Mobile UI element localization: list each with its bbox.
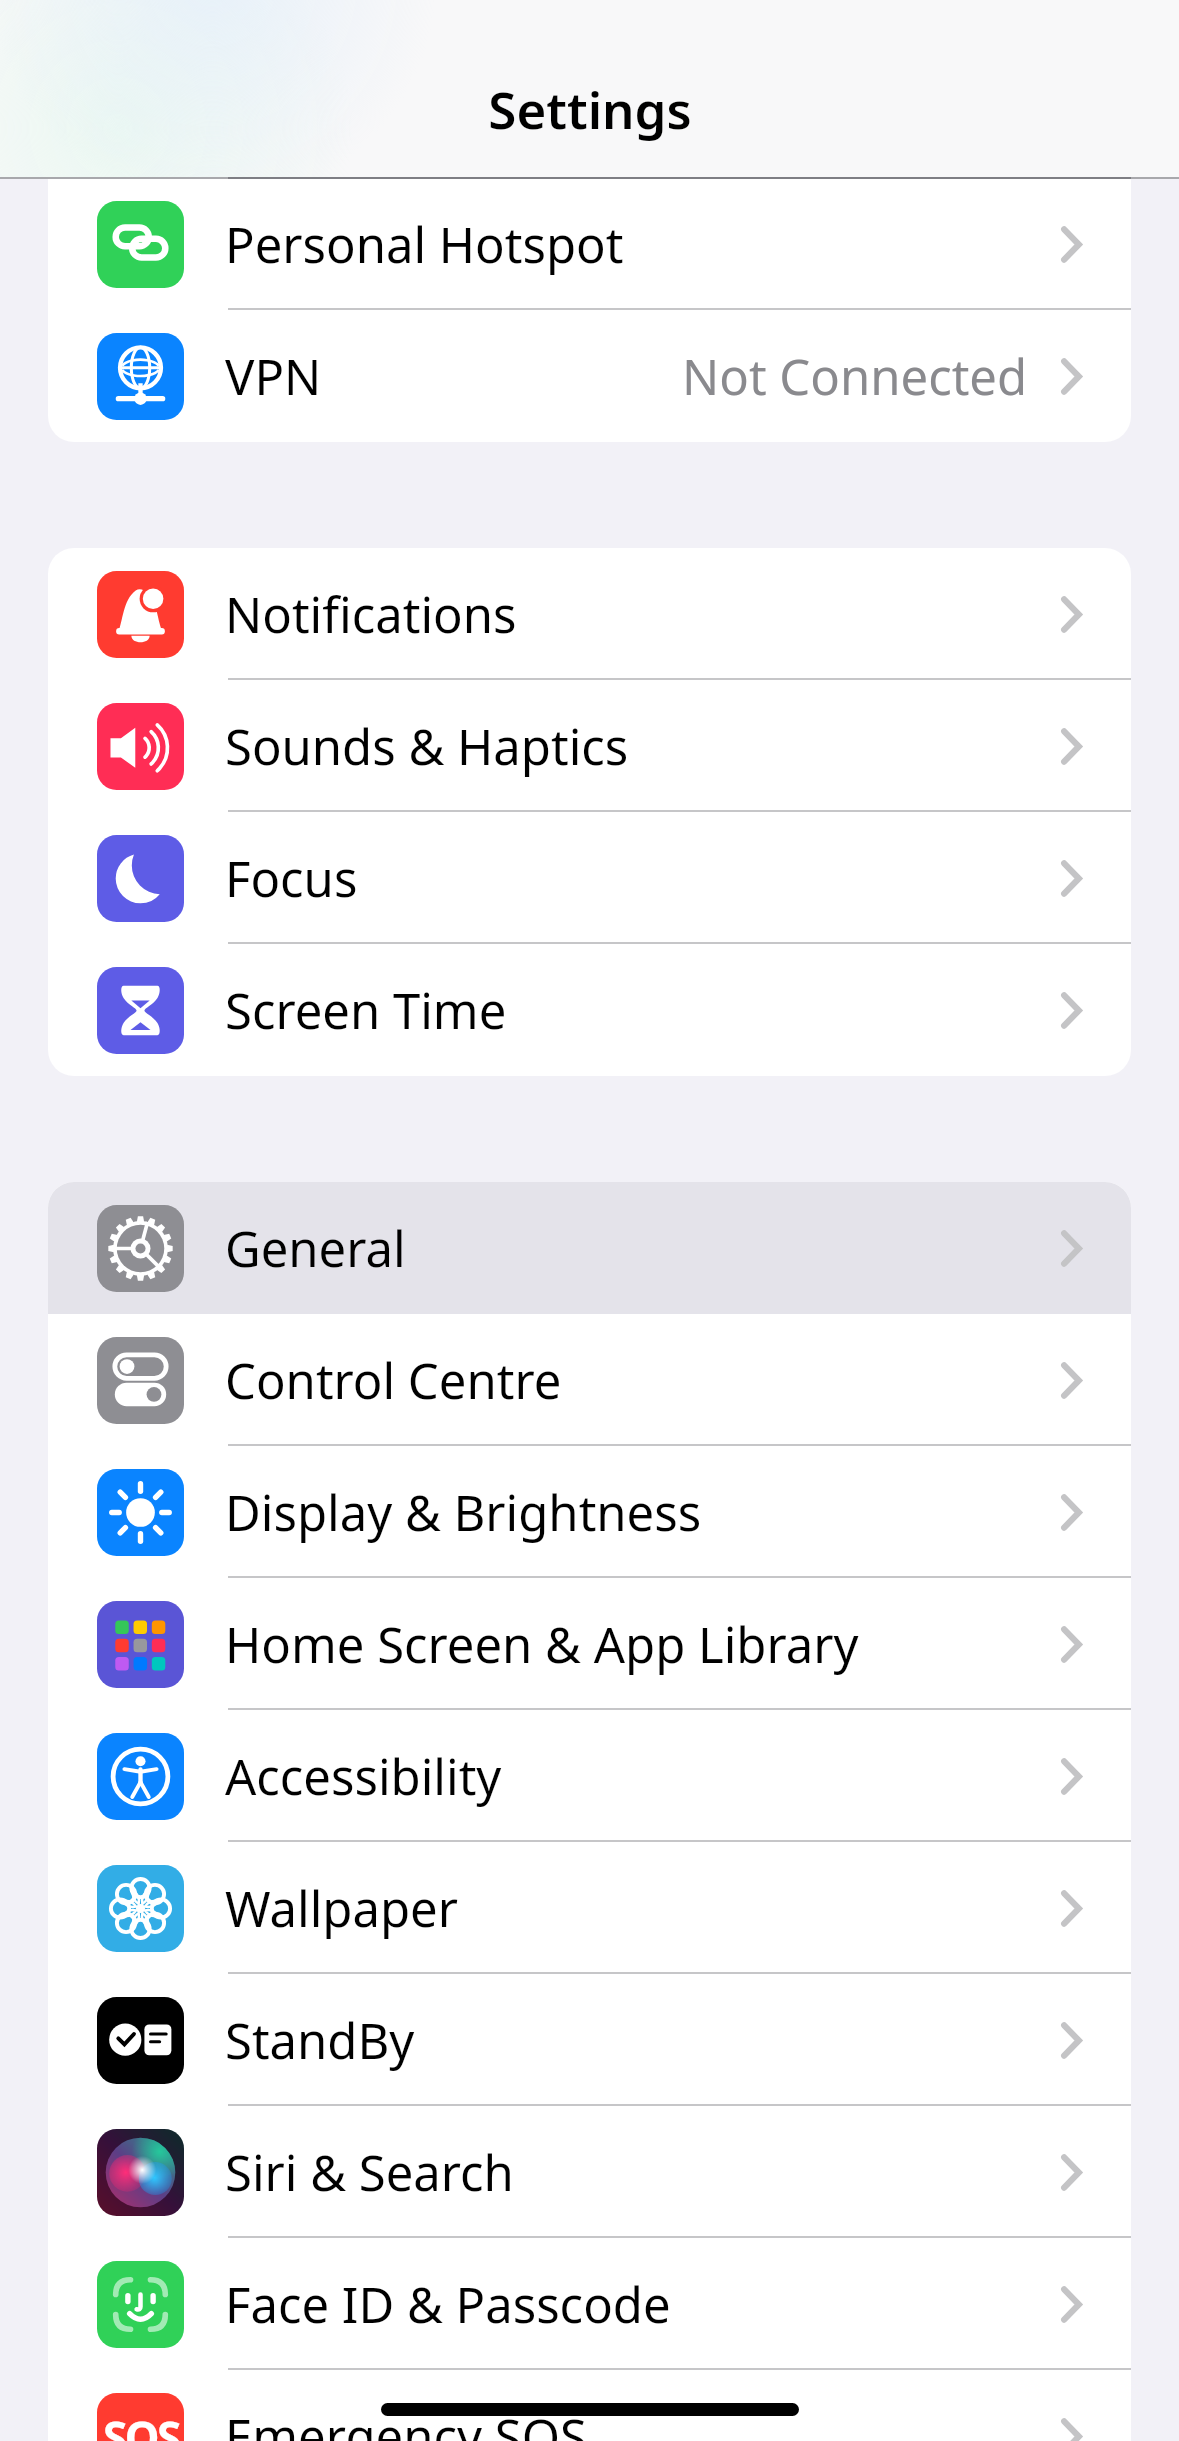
staticText: Control Centre — [225, 1347, 562, 1414]
other: Open — [1061, 1362, 1082, 1399]
other: Open — [1061, 358, 1082, 395]
other: Open — [1061, 2418, 1082, 2441]
staticText: General — [225, 1215, 406, 1282]
other: Open — [1061, 1626, 1082, 1663]
staticText: Focus — [225, 845, 358, 912]
other: Open — [1061, 2286, 1082, 2323]
other: Open — [1061, 1890, 1082, 1927]
staticText: Siri & Search — [225, 2139, 514, 2206]
staticText: Accessibility — [225, 1743, 502, 1810]
staticText: Notifications — [225, 581, 517, 648]
staticText: Personal Hotspot — [225, 211, 624, 278]
other: Open — [1061, 2022, 1082, 2059]
staticText: StandBy — [225, 2007, 415, 2074]
staticText: Not Connected — [682, 343, 1028, 410]
button[interactable]: Home Screen & App Library — [48, 1578, 1131, 1710]
staticText: Screen Time — [225, 977, 507, 1044]
button[interactable]: Control Centre — [48, 1314, 1131, 1446]
staticText: Face ID & Passcode — [225, 2271, 671, 2338]
other: Open — [1061, 226, 1082, 263]
staticText: Wallpaper — [225, 1875, 458, 1942]
button[interactable]: Screen Time — [48, 944, 1131, 1076]
button[interactable]: Wallpaper — [48, 1842, 1131, 1974]
button[interactable]: SOS — [48, 2370, 1131, 2441]
button[interactable]: Focus — [48, 812, 1131, 944]
other: Open — [1061, 1758, 1082, 1795]
button[interactable]: VPN — [48, 310, 1131, 442]
other: Open — [1061, 596, 1082, 633]
staticText: Home Screen & App Library — [225, 1611, 859, 1678]
other: Open — [1061, 728, 1082, 765]
other: Open — [1061, 1230, 1082, 1267]
staticText: Emergency SOS — [225, 2403, 587, 2441]
button[interactable]: General — [48, 1182, 1131, 1314]
button[interactable]: Personal Hotspot — [48, 178, 1131, 310]
button[interactable]: Accessibility — [48, 1710, 1131, 1842]
other: Open — [1061, 992, 1082, 1029]
staticText: Settings — [488, 74, 692, 143]
button[interactable]: Sounds & Haptics — [48, 680, 1131, 812]
staticText: SOS — [103, 2407, 179, 2441]
button[interactable]: Display & Brightness — [48, 1446, 1131, 1578]
staticText: Display & Brightness — [225, 1479, 702, 1546]
staticText: Sounds & Haptics — [225, 713, 629, 780]
button[interactable]: StandBy — [48, 1974, 1131, 2106]
button[interactable]: Siri & Search — [48, 2106, 1131, 2238]
staticText: VPN — [225, 343, 322, 410]
other: Open — [1061, 860, 1082, 897]
other: Open — [1061, 1494, 1082, 1531]
other: Open — [1061, 2154, 1082, 2191]
button[interactable]: Face ID & Passcode — [48, 2238, 1131, 2370]
button[interactable]: Notifications — [48, 548, 1131, 680]
